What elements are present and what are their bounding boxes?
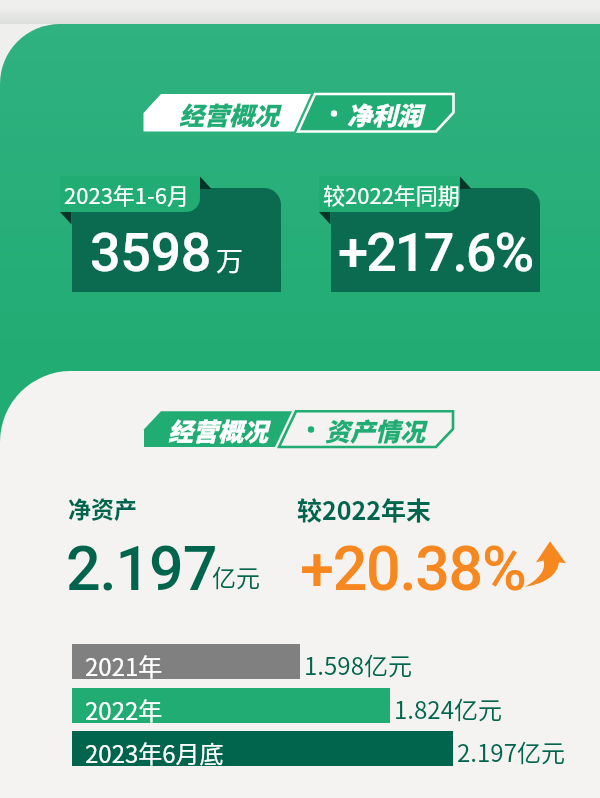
staticText: 较2022年同期 bbox=[323, 178, 460, 210]
staticText: 3598 bbox=[90, 221, 211, 284]
staticText: 2023年1-6月 bbox=[64, 178, 189, 210]
staticText: 2.197亿元 bbox=[457, 734, 565, 769]
staticText: 净资产 bbox=[68, 491, 137, 524]
other: Increase bbox=[524, 540, 569, 589]
staticText: 经营概况 bbox=[168, 412, 269, 448]
staticText: 资产情况 bbox=[325, 412, 426, 448]
staticText: +217.6% bbox=[338, 221, 533, 284]
staticText: 2022年 bbox=[85, 692, 163, 727]
staticText: +20.38% bbox=[300, 533, 526, 604]
staticText: 2023年6月底 bbox=[85, 735, 224, 770]
staticText: 2.197 bbox=[66, 533, 217, 604]
button[interactable] bbox=[72, 688, 390, 723]
staticText: 万 bbox=[216, 240, 243, 279]
button[interactable] bbox=[331, 188, 540, 292]
button[interactable]: 经营概况 bbox=[140, 90, 462, 136]
staticText: 净利润 bbox=[347, 96, 423, 132]
staticText: 1.598亿元 bbox=[304, 647, 412, 682]
staticText: 2021年 bbox=[85, 648, 163, 683]
button[interactable] bbox=[72, 188, 281, 292]
button[interactable]: 经营概况 bbox=[140, 407, 462, 453]
staticText: 亿元 bbox=[212, 559, 260, 594]
button[interactable] bbox=[72, 731, 453, 766]
button[interactable] bbox=[72, 644, 300, 679]
staticText: 1.824亿元 bbox=[394, 691, 502, 726]
staticText: 经营概况 bbox=[179, 96, 280, 132]
staticText: 较2022年末 bbox=[297, 491, 432, 527]
